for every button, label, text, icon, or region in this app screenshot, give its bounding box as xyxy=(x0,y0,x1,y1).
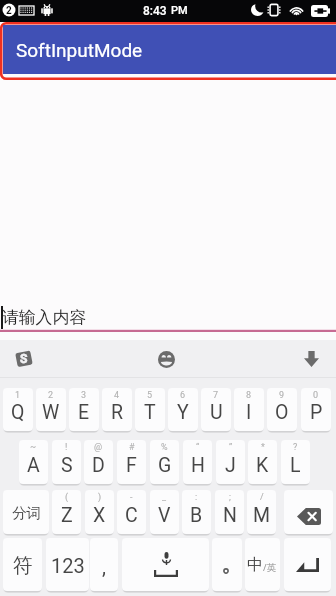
button[interactable]: ~ xyxy=(19,440,48,484)
staticText: O xyxy=(275,401,289,424)
staticText: 123 xyxy=(51,554,85,577)
staticText: 2 xyxy=(48,390,54,401)
button[interactable]: , xyxy=(90,538,118,591)
button[interactable]: 5 xyxy=(135,388,165,431)
button[interactable]: 8 xyxy=(234,388,264,431)
button[interactable]: “ xyxy=(183,440,212,484)
staticText: C xyxy=(125,504,138,527)
staticText: : xyxy=(195,492,198,503)
button[interactable]: % xyxy=(150,440,179,484)
button[interactable]: 6 xyxy=(168,388,198,431)
staticText: X xyxy=(93,504,106,527)
button[interactable]: ” xyxy=(216,440,245,484)
staticText: S xyxy=(20,352,28,366)
staticText: U xyxy=(210,401,223,424)
button[interactable]: * xyxy=(248,440,277,484)
staticText: P xyxy=(310,401,323,424)
staticText: R xyxy=(111,401,124,424)
staticText: T xyxy=(144,401,156,424)
staticText: @ xyxy=(94,442,103,453)
button[interactable]: - xyxy=(117,490,146,534)
staticText: 0 xyxy=(313,390,319,401)
staticText: Q xyxy=(11,401,25,424)
staticText: # xyxy=(129,442,135,453)
staticText: 3 xyxy=(81,390,87,401)
staticText: 8 xyxy=(246,390,252,401)
staticText: 7 xyxy=(213,390,219,401)
staticText: ( xyxy=(65,492,69,503)
button[interactable]: Hide keyboard xyxy=(304,351,319,367)
staticText: % xyxy=(161,442,168,453)
button[interactable]: 3 xyxy=(69,388,99,431)
staticText: F xyxy=(126,454,137,477)
button[interactable]: Emoji xyxy=(158,351,175,368)
button[interactable]: 123 xyxy=(46,538,89,591)
staticText: 6 xyxy=(180,390,186,401)
button[interactable]: 分词 xyxy=(3,490,49,534)
staticText: SoftInputMode xyxy=(16,39,143,61)
staticText: ~ xyxy=(30,442,37,453)
button[interactable]: 9 xyxy=(267,388,297,431)
staticText: 请输入内容 xyxy=(2,307,86,328)
staticText: N xyxy=(223,504,237,527)
button[interactable]: 2 xyxy=(36,388,66,431)
staticText: “ xyxy=(196,442,200,453)
staticText: ! xyxy=(65,442,68,453)
staticText: 1 xyxy=(15,390,21,401)
staticText: , xyxy=(102,555,106,578)
staticText: PM xyxy=(171,4,188,17)
button[interactable]: / xyxy=(247,490,276,534)
button[interactable]: Space xyxy=(122,538,209,591)
staticText: ” xyxy=(229,442,233,453)
staticText: M xyxy=(253,504,271,527)
staticText: D xyxy=(92,454,105,477)
button[interactable]: @ xyxy=(84,440,113,484)
button[interactable]: Period xyxy=(212,538,242,591)
button[interactable]: Sogou input settings xyxy=(14,350,34,368)
staticText: 符 xyxy=(13,553,33,578)
staticText: Z xyxy=(61,504,73,527)
staticText: 9 xyxy=(279,390,285,401)
button[interactable]: ; xyxy=(215,490,244,534)
staticText: I xyxy=(246,401,252,424)
button[interactable]: 0 xyxy=(301,388,331,431)
staticText: V xyxy=(158,504,171,527)
staticText: * xyxy=(261,442,265,453)
staticText: W xyxy=(42,401,60,424)
staticText: - xyxy=(130,492,133,503)
button[interactable]: 1 xyxy=(3,388,33,431)
button[interactable]: : xyxy=(182,490,211,534)
button[interactable]: 符 xyxy=(3,538,42,591)
button[interactable]: SoftInputMode xyxy=(3,25,336,74)
staticText: /英 xyxy=(263,561,277,574)
button[interactable]: 7 xyxy=(201,388,231,431)
staticText: ) xyxy=(98,492,102,503)
button[interactable]: Backspace xyxy=(284,490,333,534)
staticText: B xyxy=(190,504,203,527)
staticText: J xyxy=(225,454,236,477)
staticText: 分词 xyxy=(12,504,41,522)
staticText: E xyxy=(78,401,90,424)
button[interactable]: ) xyxy=(85,490,114,534)
staticText: H xyxy=(191,454,205,477)
staticText: 中 xyxy=(247,555,263,575)
staticText: Y xyxy=(177,401,189,424)
button[interactable]: 4 xyxy=(102,388,132,431)
button[interactable]: ? xyxy=(281,440,310,484)
staticText: L xyxy=(290,454,301,477)
staticText: A xyxy=(27,454,40,477)
button[interactable]: ! xyxy=(52,440,81,484)
button[interactable]: 中 xyxy=(245,538,280,591)
button[interactable]: ( xyxy=(52,490,81,534)
staticText: ; xyxy=(229,492,231,503)
staticText: 2 xyxy=(6,5,12,17)
button[interactable]: # xyxy=(117,440,146,484)
staticText: 5 xyxy=(147,390,153,401)
staticText: / xyxy=(260,492,264,503)
staticText: 4 xyxy=(114,390,120,401)
button[interactable]: Enter xyxy=(284,538,331,591)
staticText: _ xyxy=(162,492,167,503)
staticText: 8:43 xyxy=(143,4,167,18)
staticText: G xyxy=(158,454,172,477)
button[interactable]: _ xyxy=(150,490,179,534)
